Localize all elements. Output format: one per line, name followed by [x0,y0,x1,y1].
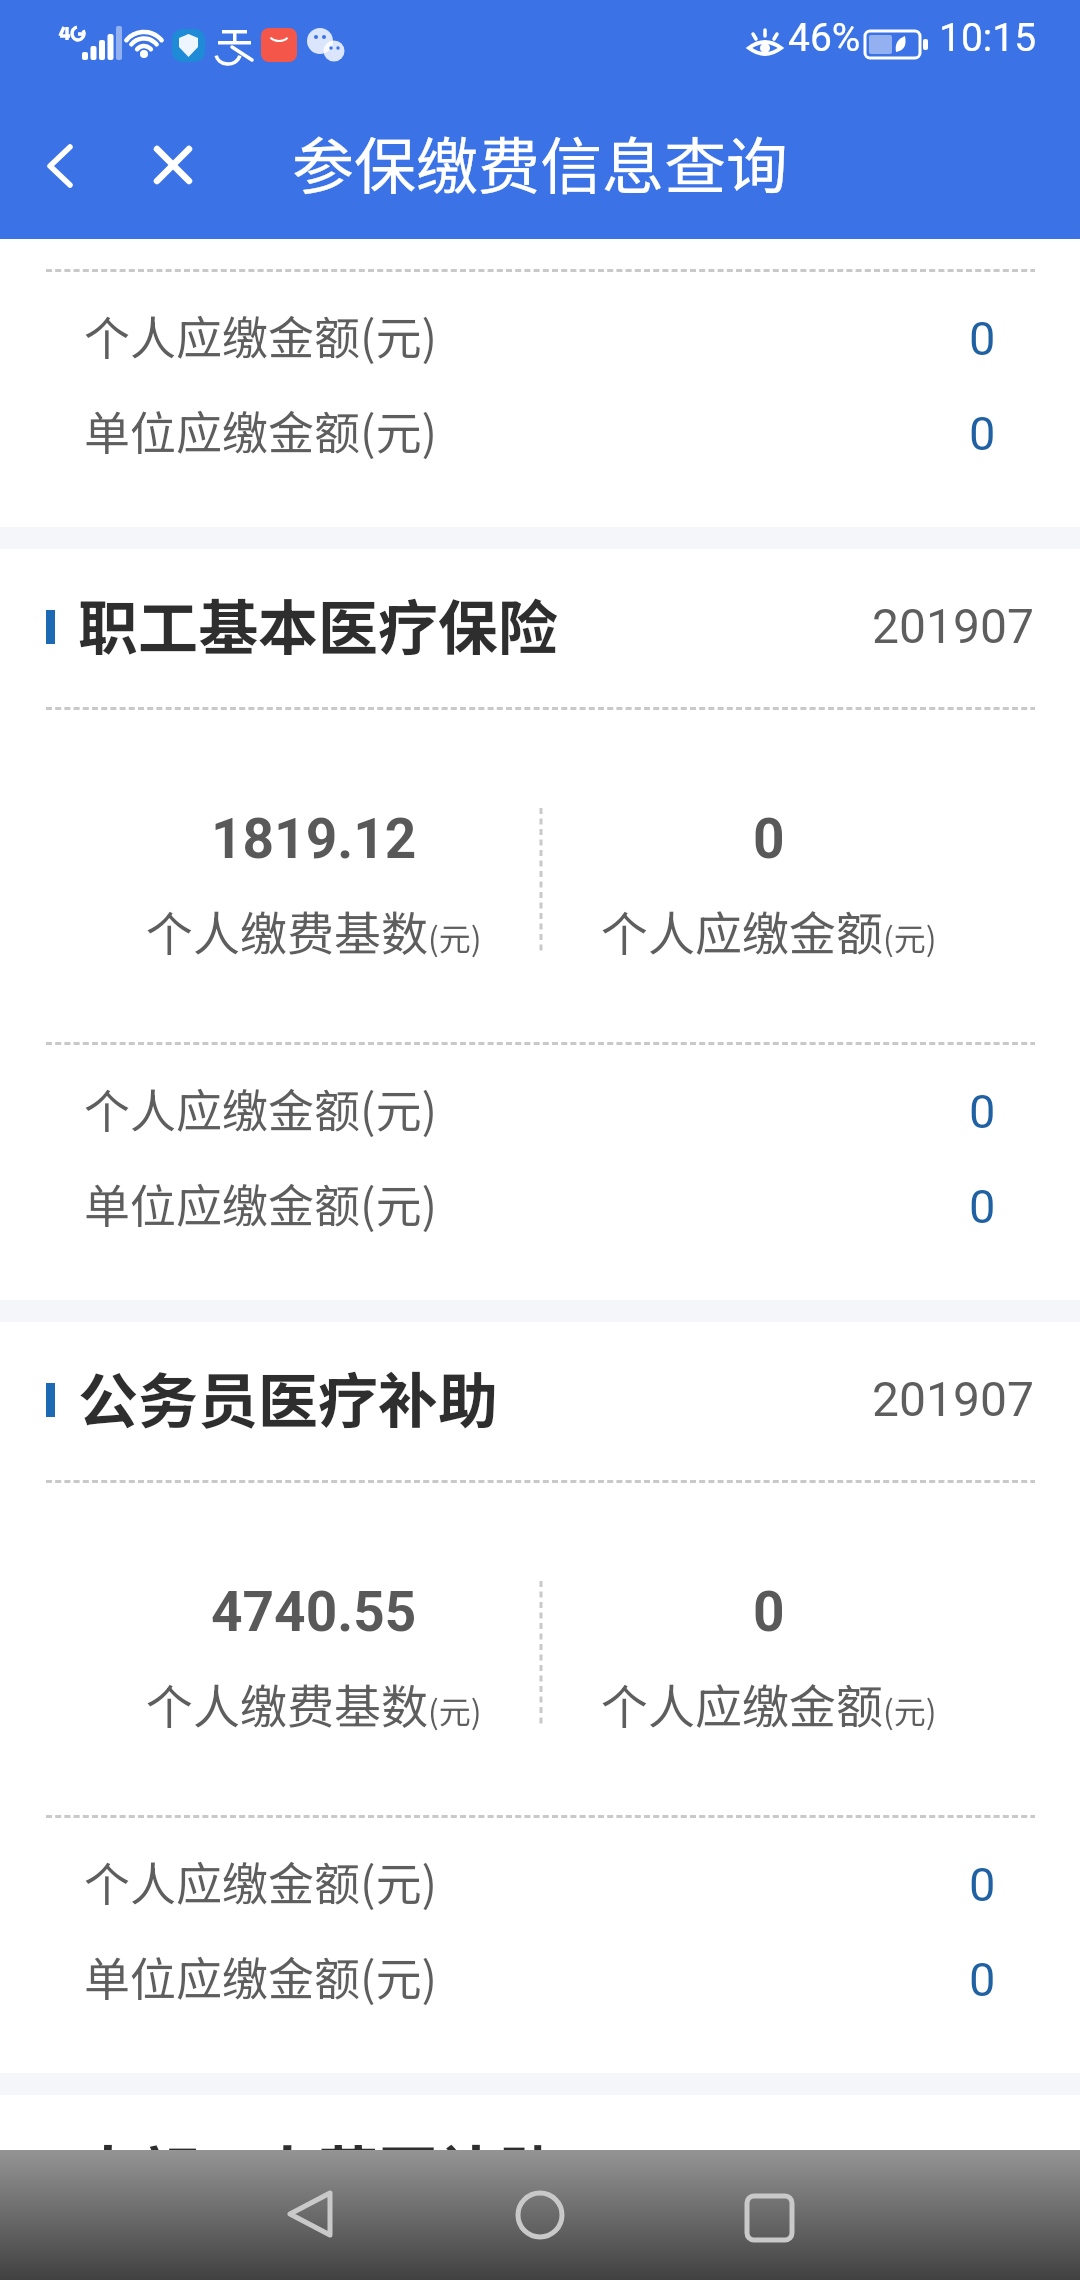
button[interactable]: 个人应缴金额(元) [0,288,1080,383]
staticText: 0 [753,807,785,871]
staticText: 0 [969,1084,996,1139]
button[interactable]: 0 [541,1483,997,1815]
staticText: 4740.55 [211,1580,417,1644]
staticText: 0 [969,1857,996,1912]
staticText: 个人应缴金额(元) [601,896,937,964]
button[interactable]: Recents [737,2188,797,2248]
staticText: 个人应缴金额(元) [84,302,438,369]
staticText: 1819.12 [211,807,417,871]
staticText: 个人应缴金额(元) [84,1075,438,1142]
button[interactable]: 单位应缴金额(元) [0,1156,1080,1251]
button[interactable]: 公务员医疗补助 [0,1322,1080,1480]
staticText: 46% [788,15,861,61]
button[interactable]: 大额工人菜园补助 [0,2095,1080,2150]
staticText: 大额工人菜园补助 [78,2126,558,2150]
button[interactable]: 个人应缴金额(元) [0,1061,1080,1156]
staticText: 0 [969,311,996,366]
button[interactable]: 单位应缴金额(元) [0,383,1080,478]
button[interactable]: 0 [541,710,997,1042]
staticText: 201907 [872,1371,1034,1427]
staticText: 201907 [872,598,1034,654]
staticText: 个人缴费基数(元) [146,896,482,964]
staticText: 个人应缴金额(元) [601,1669,937,1737]
staticText: 个人缴费基数(元) [146,1669,482,1737]
button[interactable]: 4740.55 [86,1483,541,1815]
button[interactable]: 个人应缴金额(元) [0,1834,1080,1929]
staticText: 公务员医疗补助 [78,1353,498,1440]
staticText: 单位应缴金额(元) [84,397,438,464]
button[interactable]: 职工基本医疗保险 [0,549,1080,707]
staticText: 单位应缴金额(元) [84,1170,438,1237]
staticText: 单位应缴金额(元) [84,1943,438,2010]
staticText: 10:15 [939,15,1037,61]
staticText: 0 [969,1952,996,2007]
staticText: 0 [969,406,996,461]
button[interactable]: 单位应缴金额(元) [0,1929,1080,2024]
staticText: 职工基本医疗保险 [78,580,558,667]
button[interactable]: Back [20,126,100,206]
staticText: 参保缴费信息查询 [292,117,789,207]
staticText: 0 [753,1580,785,1644]
button[interactable]: Home [510,2185,570,2245]
staticText: 个人应缴金额(元) [84,1848,438,1915]
button[interactable]: 1819.12 [86,710,541,1042]
staticText: 0 [969,1179,996,1234]
button[interactable]: Back [280,2184,340,2244]
button[interactable]: Close [132,124,212,204]
